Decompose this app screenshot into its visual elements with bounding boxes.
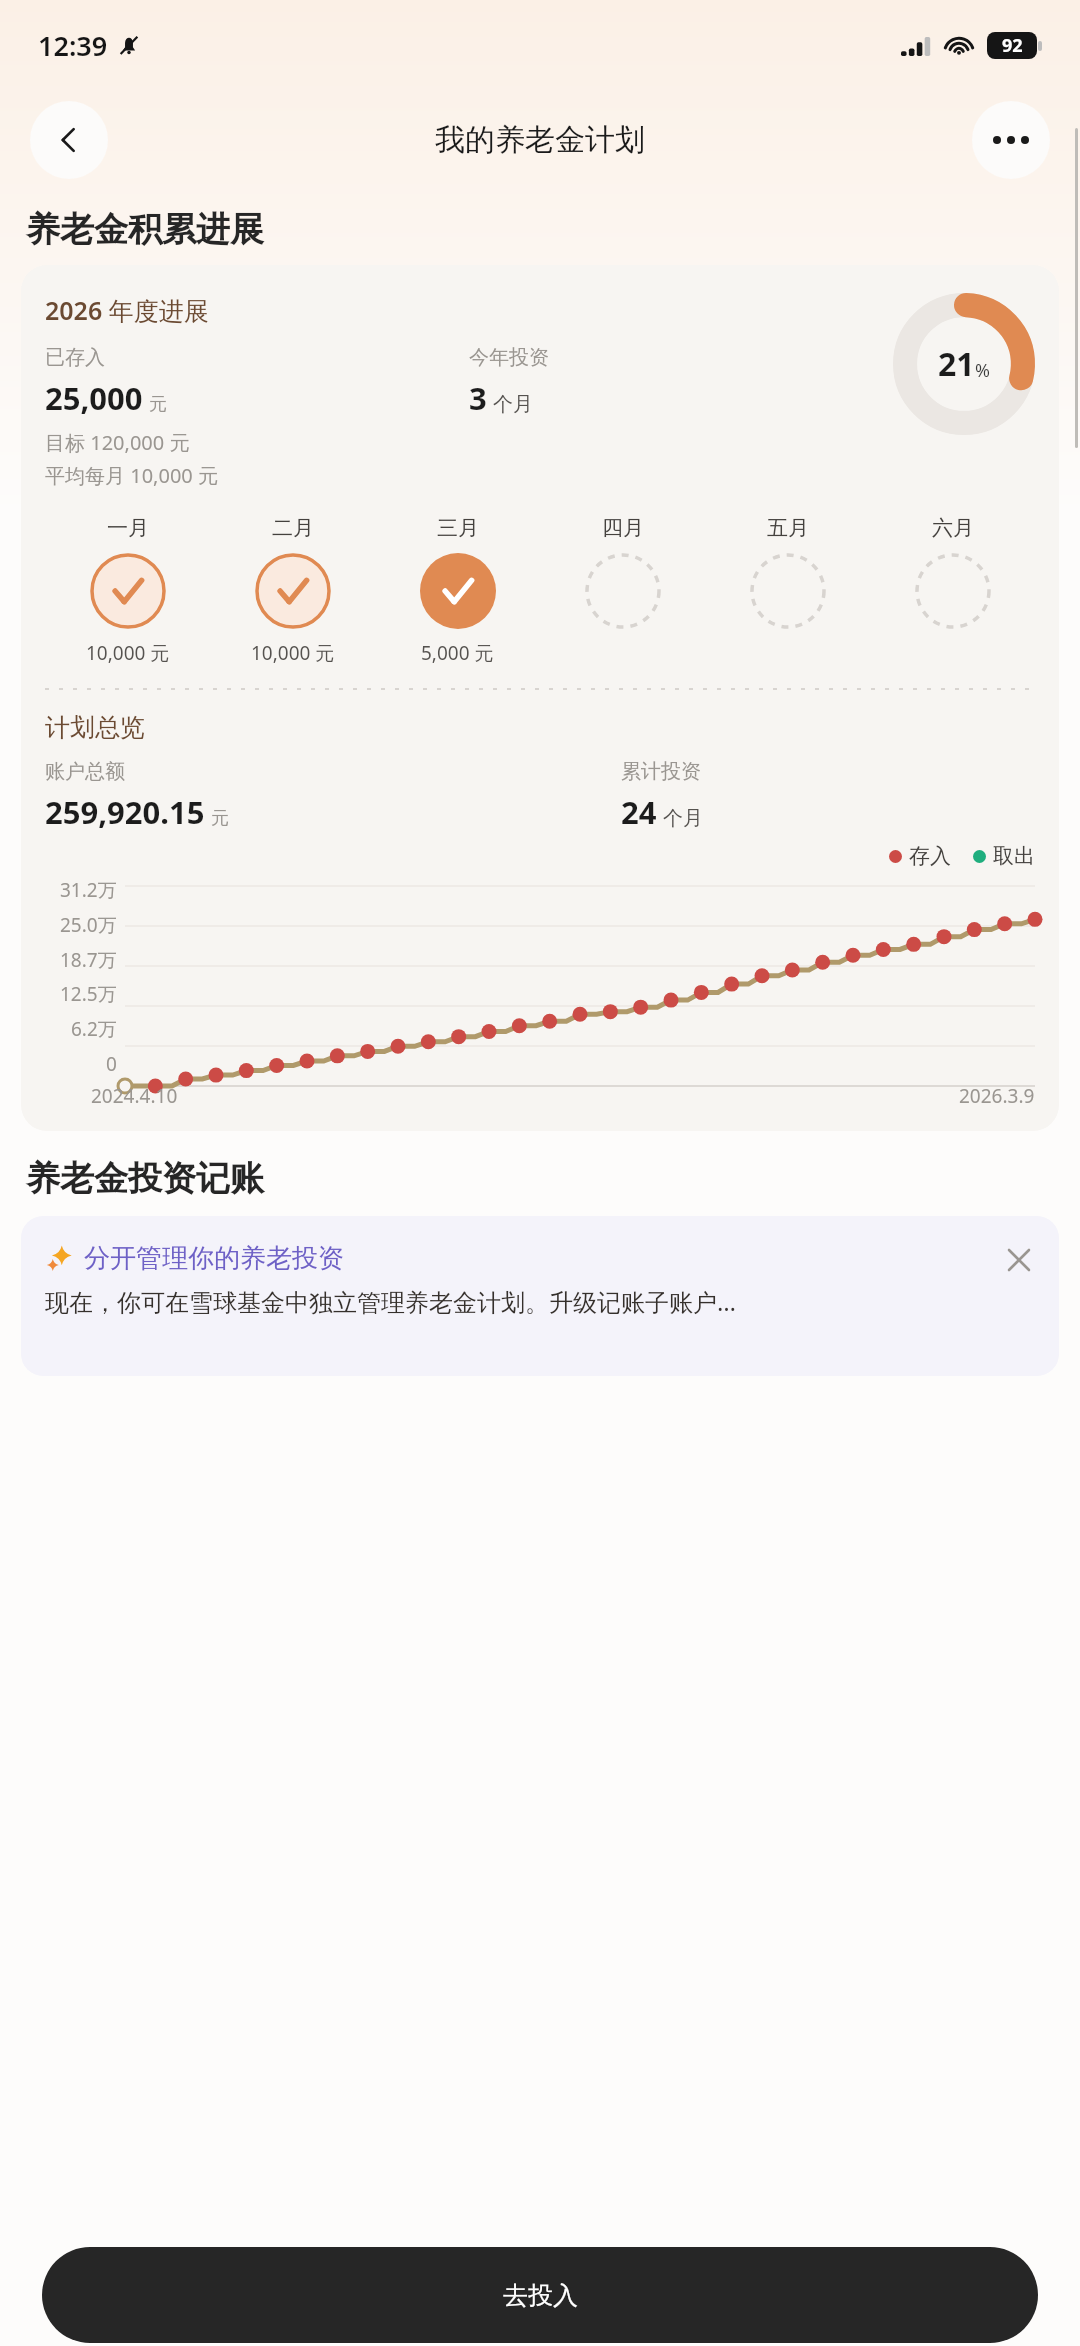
button[interactable]: 三月 — [375, 515, 540, 666]
staticText: 三月 — [437, 515, 479, 541]
staticText: 259,920.15 — [45, 791, 205, 833]
staticText: 累计投资 — [621, 759, 701, 784]
staticText: 今年投资 — [469, 345, 549, 370]
staticText: 24 — [621, 791, 657, 833]
staticText: 18.7万 — [60, 947, 117, 973]
staticText: 平均每月 10,000 元 — [45, 462, 218, 489]
staticText: 31.2万 — [60, 877, 117, 903]
button[interactable]: Back — [30, 101, 108, 179]
staticText: 3 — [469, 377, 487, 419]
staticText: 25,000 — [45, 377, 143, 419]
button[interactable]: More options — [972, 101, 1050, 179]
staticText: 92 — [1002, 33, 1023, 58]
staticText: 分开管理你的养老投资 — [84, 1242, 344, 1275]
staticText: 存入 — [909, 843, 951, 869]
staticText: 现在，你可在雪球基金中独立管理养老金计划。升级记账子账户… — [45, 1285, 736, 1318]
staticText: 我的养老金计划 — [435, 121, 645, 159]
staticText: 12.5万 — [60, 981, 117, 1007]
staticText: 目标 120,000 元 — [45, 429, 190, 456]
staticText: 元 — [149, 393, 167, 416]
staticText: 元 — [211, 807, 229, 830]
button[interactable]: 去投入 — [42, 2247, 1038, 2343]
button[interactable]: 五月 — [705, 515, 870, 640]
staticText: 10,000 元 — [86, 640, 170, 666]
staticText: 个月 — [663, 806, 703, 831]
staticText: 五月 — [767, 515, 809, 541]
staticText: 账户总额 — [45, 759, 125, 784]
staticText: 养老金积累进展 — [26, 208, 264, 251]
staticText: 0 — [106, 1051, 117, 1077]
staticText: 2026 年度进展 — [45, 293, 209, 327]
button[interactable]: 四月 — [540, 515, 705, 640]
button[interactable]: 一月 — [45, 515, 210, 666]
staticText: % — [975, 358, 990, 383]
staticText: 个月 — [493, 392, 533, 417]
staticText: 2026.3.9 — [959, 1083, 1035, 1109]
staticText: 二月 — [272, 515, 314, 541]
button[interactable]: 六月 — [870, 515, 1035, 640]
button[interactable]: 分开管理你的养老投资 — [21, 1216, 1059, 1376]
staticText: 四月 — [602, 515, 644, 541]
staticText: 5,000 元 — [421, 640, 494, 666]
staticText: 一月 — [107, 515, 149, 541]
button[interactable]: Close banner — [995, 1236, 1043, 1284]
staticText: 10,000 元 — [251, 640, 335, 666]
staticText: 计划总览 — [45, 712, 145, 743]
staticText: 六月 — [932, 515, 974, 541]
staticText: 已存入 — [45, 345, 105, 370]
button[interactable]: 二月 — [210, 515, 375, 666]
staticText: 养老金投资记账 — [26, 1157, 264, 1200]
staticText: 25.0万 — [60, 912, 117, 938]
staticText: 2024.4.10 — [91, 1083, 178, 1109]
staticText: 21 — [938, 342, 975, 386]
staticText: 6.2万 — [71, 1016, 117, 1042]
staticText: 取出 — [993, 843, 1035, 869]
staticText: 去投入 — [503, 2280, 578, 2311]
staticText: 12:39 — [38, 27, 108, 64]
